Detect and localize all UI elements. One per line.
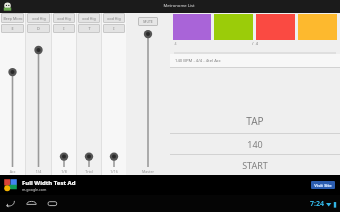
- button[interactable]: [133, 26, 163, 169]
- button[interactable]: [102, 33, 126, 169]
- staticText: E: [11, 26, 14, 31]
- button[interactable]: Metronome List: [17, 0, 340, 13]
- staticText: / 4: [252, 41, 258, 46]
- button[interactable]: T: [78, 24, 100, 33]
- button[interactable]: [52, 33, 76, 169]
- staticText: 7:24: [310, 199, 324, 209]
- staticText: D: [37, 26, 40, 31]
- staticText: 140 BPM - 4/4 - 4tel Acc: [175, 58, 221, 64]
- staticText: I: [113, 26, 115, 31]
- button[interactable]: [26, 33, 51, 169]
- button[interactable]: START: [170, 155, 340, 175]
- staticText: Beep Micro: [3, 16, 23, 21]
- button[interactable]: E: [1, 24, 24, 33]
- staticText: ood Hig: [107, 16, 121, 21]
- staticText: 4: [174, 41, 177, 46]
- button[interactable]: ood Hig: [27, 13, 50, 23]
- button[interactable]: ood Hig: [53, 13, 75, 23]
- button[interactable]: ood Hig: [78, 13, 100, 23]
- staticText: 140: [247, 138, 263, 150]
- staticText: Metronome List: [163, 3, 195, 9]
- button[interactable]: Recents: [46, 197, 59, 210]
- button[interactable]: 140: [170, 134, 340, 154]
- button[interactable]: Visit Site: [314, 181, 332, 189]
- button[interactable]: D: [27, 24, 50, 33]
- staticText: 1/16: [102, 169, 126, 174]
- button[interactable]: [0, 33, 25, 169]
- button[interactable]: I: [53, 24, 75, 33]
- button[interactable]: I: [103, 24, 125, 33]
- staticText: I: [63, 26, 65, 31]
- staticText: Acc: [0, 169, 25, 174]
- button[interactable]: ood Hig: [103, 13, 125, 23]
- staticText: TAP: [246, 114, 264, 128]
- staticText: Visit Site: [314, 183, 332, 188]
- staticText: Master: [133, 169, 163, 174]
- staticText: START: [242, 159, 268, 171]
- staticText: 1/8: [52, 169, 76, 174]
- staticText: m.google.com: [22, 187, 47, 192]
- button[interactable]: MUTE: [138, 17, 158, 26]
- staticText: ood Hig: [57, 16, 71, 21]
- staticText: ood Hig: [32, 16, 46, 21]
- staticText: T: [88, 26, 91, 31]
- button[interactable]: [77, 33, 101, 169]
- staticText: Full Width Test Ad: [22, 179, 76, 187]
- staticText: 1/4: [26, 169, 51, 174]
- button[interactable]: Beep Micro: [1, 13, 24, 23]
- staticText: ood Hig: [82, 16, 96, 21]
- button[interactable]: TAP: [170, 108, 340, 133]
- button[interactable]: Home: [25, 197, 38, 210]
- staticText: Triol: [77, 169, 101, 174]
- staticText: MUTE: [143, 19, 153, 24]
- button[interactable]: Back: [4, 197, 17, 210]
